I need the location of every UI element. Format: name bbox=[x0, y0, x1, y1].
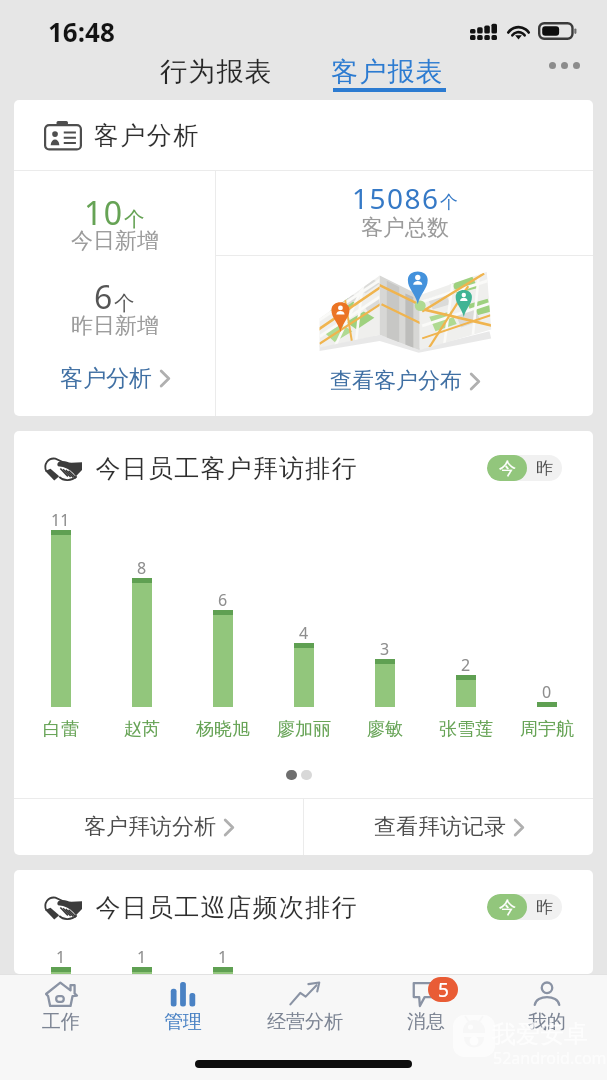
staticText: 昨 bbox=[536, 897, 553, 918]
staticText: 10 bbox=[84, 191, 124, 235]
staticText: 我爱安卓 bbox=[492, 1019, 588, 1049]
button[interactable]: Profile bbox=[486, 981, 607, 1043]
button[interactable]: 行为报表 bbox=[148, 49, 285, 95]
button[interactable]: Messages bbox=[365, 981, 486, 1043]
other: Work bbox=[44, 981, 78, 1007]
button[interactable]: 客户报表 bbox=[319, 49, 456, 95]
staticText: 管理 bbox=[164, 1010, 202, 1034]
staticText: 消息 bbox=[407, 1010, 445, 1034]
staticText: 客户分析 bbox=[60, 364, 152, 393]
staticText: 个 bbox=[440, 191, 458, 214]
staticText: 客户总数 bbox=[361, 214, 449, 242]
staticText: 经营分析 bbox=[267, 1010, 343, 1034]
staticText: 客户拜访分析 bbox=[84, 813, 216, 841]
staticText: 1 bbox=[218, 946, 228, 963]
staticText: 今日新增 bbox=[71, 227, 159, 255]
other: Manage bbox=[166, 981, 200, 1007]
staticText: 客户分析 bbox=[93, 120, 199, 151]
staticText: 0 bbox=[542, 681, 552, 698]
button[interactable]: Manage bbox=[122, 981, 244, 1043]
staticText: 今日员工巡店频次排行 bbox=[95, 892, 357, 923]
staticText: 1 bbox=[56, 946, 66, 963]
staticText: 张雪莲 bbox=[439, 718, 493, 741]
staticText: 6 bbox=[218, 589, 228, 606]
staticText: 今日员工客户拜访排行 bbox=[95, 453, 357, 484]
button[interactable]: 今 bbox=[487, 894, 562, 920]
staticText: 16:48 bbox=[48, 14, 115, 49]
staticText: 行为报表 bbox=[160, 55, 273, 89]
staticText: 1 bbox=[137, 946, 147, 963]
staticText: 查看拜访记录 bbox=[374, 813, 506, 841]
staticText: 工作 bbox=[42, 1010, 80, 1034]
staticText: 4 bbox=[299, 622, 309, 639]
staticText: 昨 bbox=[536, 458, 553, 479]
other: Business analysis bbox=[288, 981, 322, 1007]
button[interactable]: Business analysis bbox=[244, 981, 365, 1043]
staticText: 今 bbox=[499, 897, 516, 918]
button[interactable]: 今 bbox=[487, 455, 562, 481]
staticText: 客户报表 bbox=[331, 55, 444, 89]
staticText: 我的 bbox=[528, 1010, 566, 1034]
staticText: 11 bbox=[51, 509, 70, 526]
other: Profile bbox=[530, 981, 564, 1007]
staticText: 廖加丽 bbox=[277, 718, 331, 741]
other: Messages bbox=[409, 981, 443, 1007]
staticText: 3 bbox=[380, 638, 390, 655]
staticText: 杨晓旭 bbox=[196, 718, 250, 741]
staticText: 昨日新增 bbox=[71, 312, 159, 340]
staticText: 15086 bbox=[352, 179, 440, 217]
staticText: 赵芮 bbox=[124, 718, 160, 741]
staticText: 6 bbox=[94, 275, 114, 319]
staticText: 白蕾 bbox=[43, 718, 79, 741]
staticText: 个 bbox=[124, 206, 145, 232]
staticText: 个 bbox=[114, 290, 135, 316]
staticText: 周宇航 bbox=[520, 718, 574, 741]
staticText: 2 bbox=[461, 654, 471, 671]
button[interactable]: 客户分析 bbox=[54, 361, 176, 396]
button[interactable]: 查看拜访记录 bbox=[304, 799, 593, 855]
staticText: 8 bbox=[137, 557, 147, 574]
button[interactable]: Work bbox=[0, 981, 122, 1043]
staticText: 5 bbox=[438, 977, 449, 1002]
staticText: 查看客户分布 bbox=[330, 367, 462, 395]
button[interactable]: 客户拜访分析 bbox=[14, 799, 303, 855]
staticText: 廖敏 bbox=[367, 718, 403, 741]
staticText: 今 bbox=[499, 458, 516, 479]
button[interactable]: 查看客户分布 bbox=[324, 364, 486, 398]
button[interactable]: More options bbox=[539, 52, 600, 79]
